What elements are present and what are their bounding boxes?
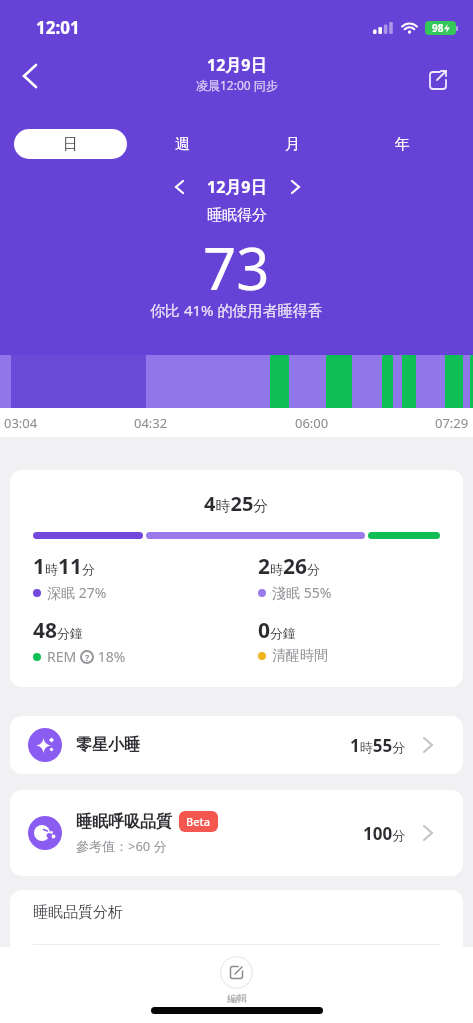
staticText: 參考值：>60 分 xyxy=(76,837,167,855)
button[interactable]: 零星小睡 xyxy=(10,716,463,774)
staticText: 04:32 xyxy=(134,414,168,432)
staticText: 07:29 xyxy=(435,414,469,432)
staticText: ? xyxy=(85,651,90,663)
staticText: 睡眠呼吸品質 xyxy=(76,812,172,832)
staticText: 1時11分 xyxy=(33,552,96,581)
staticText: 年 xyxy=(395,135,410,154)
staticText: 日 xyxy=(63,135,78,154)
staticText: 12月9日 xyxy=(207,54,267,76)
staticText: 98 xyxy=(432,21,444,35)
staticText: 月 xyxy=(285,135,300,154)
staticText: 100分 xyxy=(363,822,406,845)
staticText: 12月9日 xyxy=(207,176,267,198)
staticText: 淺眠 55% xyxy=(272,583,332,602)
staticText: 編輯 xyxy=(227,992,247,1005)
button[interactable]: 日 xyxy=(14,129,127,159)
staticText: 06:00 xyxy=(295,414,329,432)
staticText: 4時25分 xyxy=(204,490,269,517)
staticText: 0分鐘 xyxy=(258,616,297,645)
staticText: Beta xyxy=(186,814,211,829)
button[interactable] xyxy=(167,175,191,199)
staticText: 清醒時間 xyxy=(272,647,328,665)
button[interactable]: 年 xyxy=(347,129,457,159)
staticText: 73 xyxy=(203,228,270,307)
staticText: 03:04 xyxy=(4,414,38,432)
staticText: 你比 41% 的使用者睡得香 xyxy=(150,300,323,320)
staticText: 48分鐘 xyxy=(33,616,84,645)
button[interactable]: 月 xyxy=(237,129,347,159)
staticText: 2時26分 xyxy=(258,552,321,581)
button[interactable]: 睡眠呼吸品質 xyxy=(10,790,463,876)
staticText: 睡眠品質分析 xyxy=(33,903,123,922)
button[interactable]: 睡眠品質分析 xyxy=(10,890,463,1010)
staticText: 凌晨12:00 同步 xyxy=(196,77,278,93)
staticText: 12:01 xyxy=(36,16,80,39)
staticText: REM xyxy=(47,647,80,666)
staticText: 18% xyxy=(94,647,126,666)
button[interactable] xyxy=(283,175,307,199)
button[interactable]: 4時25分 xyxy=(10,470,463,687)
staticText: 週 xyxy=(175,135,190,154)
button[interactable] xyxy=(10,56,50,96)
button[interactable]: 週 xyxy=(127,129,237,159)
staticText: 睡眠得分 xyxy=(207,206,267,225)
staticText: 深眠 27% xyxy=(47,583,107,602)
button[interactable] xyxy=(421,62,455,96)
staticText: 零星小睡 xyxy=(76,735,140,755)
button[interactable]: 編輯 xyxy=(220,956,253,1005)
staticText: 1時55分 xyxy=(350,734,406,757)
